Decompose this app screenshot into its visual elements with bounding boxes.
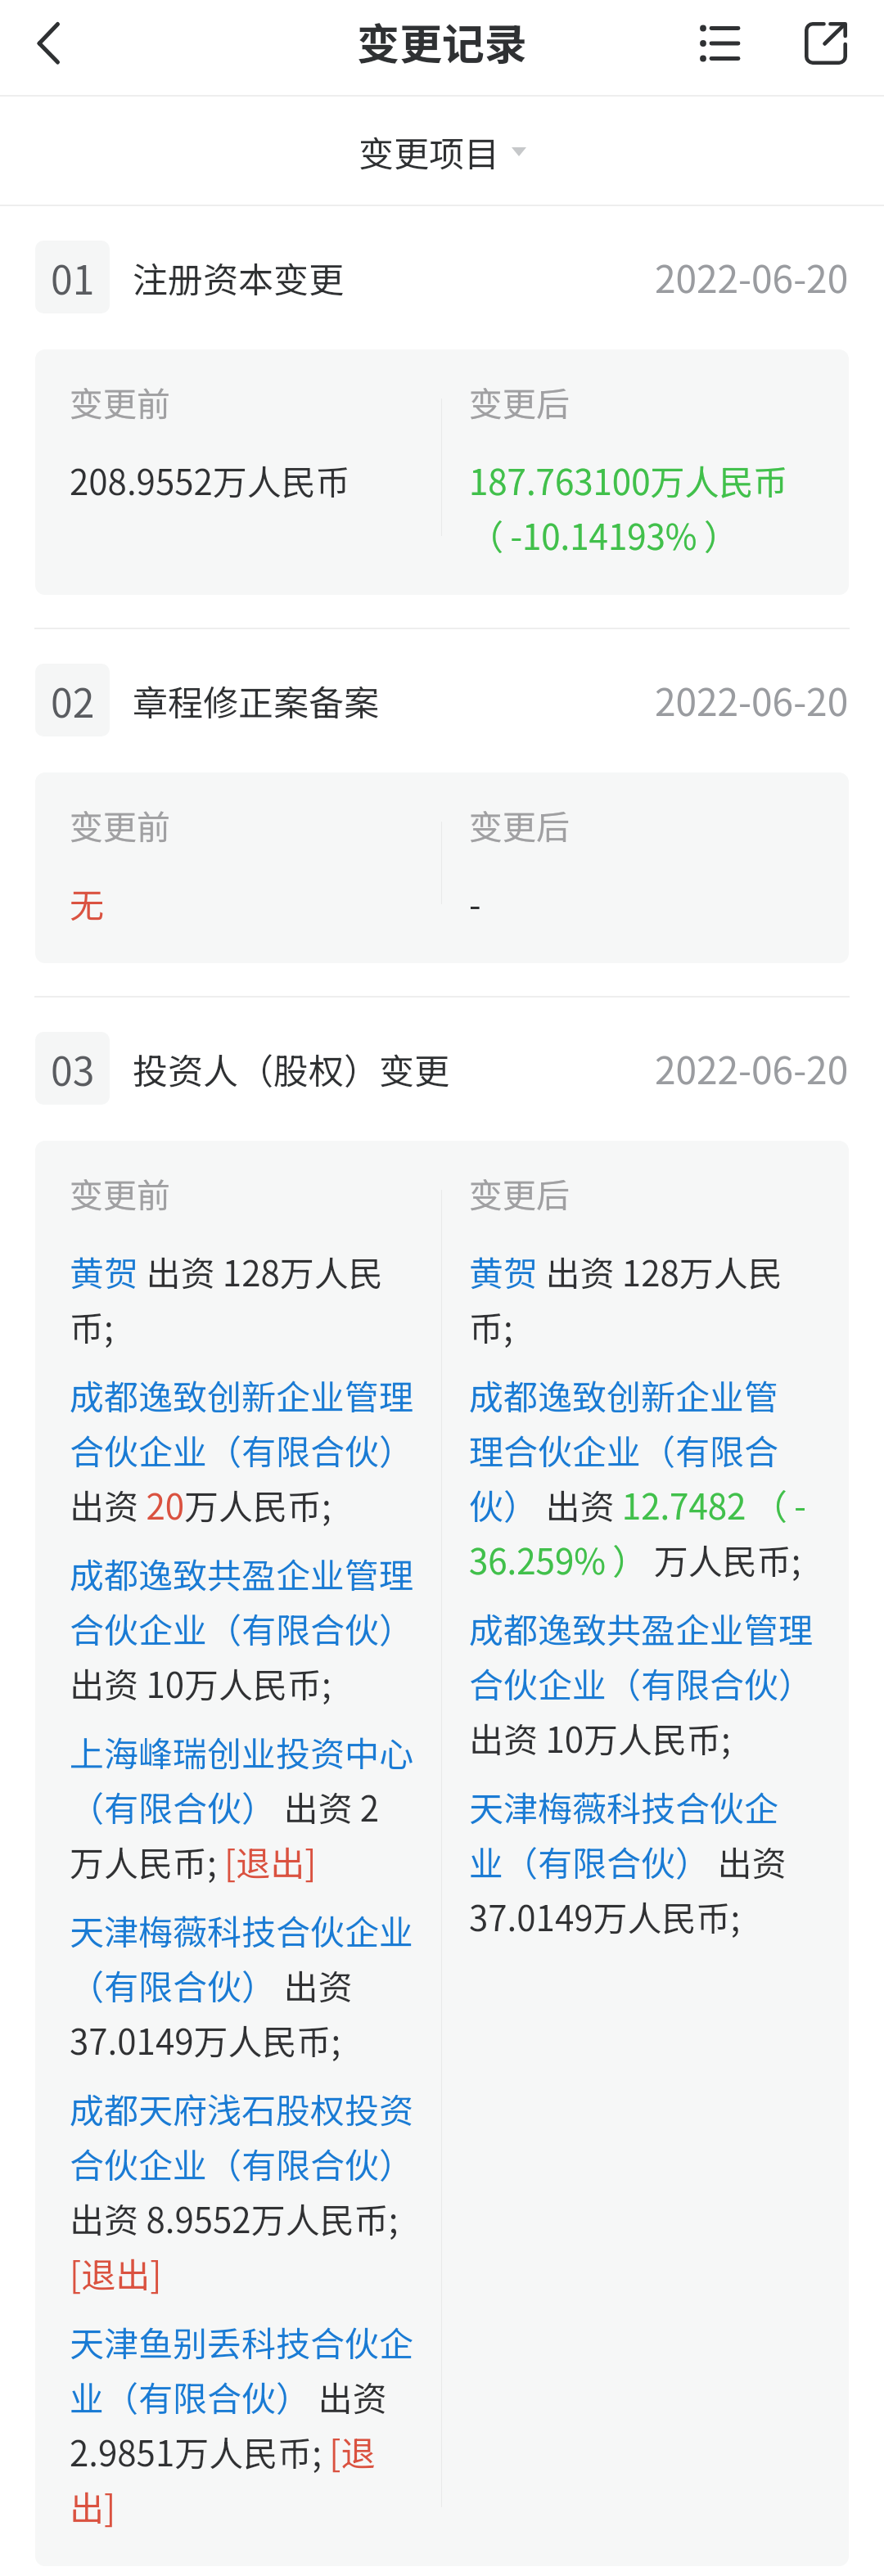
staticText: 成都逸致共盈企业管理合伙企业（有限合伙）出资 10万人民币;: [70, 1544, 413, 1709]
staticText: 注册资本变更: [133, 252, 344, 303]
staticText: 01: [51, 249, 95, 306]
staticText: 208.9552万人民币: [70, 451, 350, 506]
staticText: 变更项目: [359, 126, 499, 177]
staticText: 变更后: [469, 377, 570, 426]
staticText: 黄贺 出资 128万人民币;: [469, 1242, 814, 1352]
staticText: 2022-06-20: [655, 1041, 849, 1096]
staticText: 天津梅薇科技合伙企业（有限合伙） 出资 37.0149万人民币;: [70, 1901, 413, 2065]
staticText: 天津鱼别丢科技合伙企 业（有限合伙） 出资 2.9851万人民币; [退 出]: [70, 2313, 413, 2532]
staticText: 天津梅薇科技合伙企 业（有限合伙） 出资 37.0149万人民币;: [469, 1777, 787, 1942]
staticText: 无: [70, 874, 105, 929]
button[interactable]: Back: [13, 6, 88, 81]
staticText: 2022-06-20: [655, 673, 849, 727]
staticText: 变更后: [469, 800, 570, 849]
staticText: 03: [51, 1040, 95, 1097]
staticText: 成都逸致共盈企业管理合伙企业（有限合伙）出资 10万人民币;: [469, 1599, 814, 1763]
staticText: 变更前: [70, 377, 170, 426]
staticText: 变更记录: [357, 11, 528, 72]
staticText: 投资人（股权）变更: [133, 1043, 449, 1094]
staticText: 02: [51, 672, 95, 729]
staticText: 章程修正案备案: [133, 675, 379, 726]
staticText: 变更后: [469, 1169, 570, 1217]
staticText: -: [469, 874, 481, 929]
staticText: 成都天府浅石股权投资合伙企业（有限合伙）出资 8.9552万人民币; [退出]: [70, 2079, 413, 2299]
button[interactable]: List view: [683, 7, 755, 79]
staticText: 成都逸致创新企业管理合伙企业（有限合伙）出资 20万人民币;: [70, 1366, 413, 1530]
button[interactable]: Share: [790, 7, 862, 79]
staticText: 成都逸致创新企业管 理合伙企业（有限合 伙） 出资 12.7482 （ - 36…: [469, 1366, 806, 1585]
staticText: 黄贺 出资 128万人民币;: [70, 1242, 413, 1352]
staticText: 变更前: [70, 1169, 170, 1217]
staticText: 上海峰瑞创业投资中心（有限合伙） 出资 2万人民币; [退出]: [70, 1723, 413, 1887]
staticText: 2022-06-20: [655, 250, 849, 304]
button[interactable]: 变更项目: [359, 126, 526, 177]
staticText: 187.763100万人民币（ -10.14193% ）: [469, 451, 814, 561]
staticText: 变更前: [70, 800, 170, 849]
